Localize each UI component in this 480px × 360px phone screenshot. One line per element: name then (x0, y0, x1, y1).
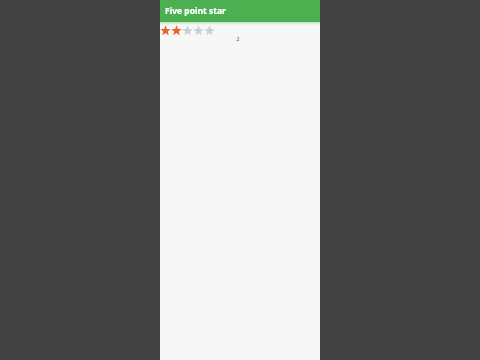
button[interactable]: Empty star (204, 25, 215, 36)
button[interactable]: Filled star (160, 25, 171, 36)
button[interactable]: Five point star (165, 5, 226, 17)
button[interactable]: Empty star (193, 25, 204, 36)
staticText: Five point star (165, 5, 226, 17)
button[interactable]: Empty star (182, 25, 193, 36)
staticText: 2 (236, 35, 240, 43)
button[interactable]: Filled star (171, 25, 182, 36)
